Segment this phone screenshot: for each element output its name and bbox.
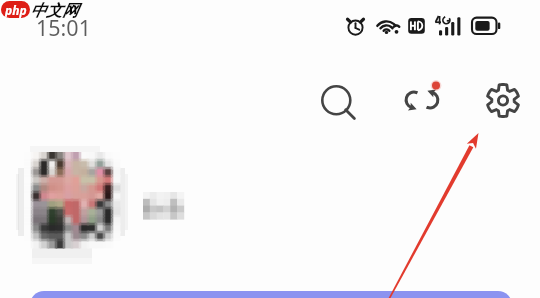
button[interactable] bbox=[10, 140, 210, 265]
staticText: 中文网 bbox=[30, 1, 78, 21]
staticText: 15:01 bbox=[36, 13, 91, 42]
button[interactable] bbox=[30, 291, 512, 298]
button[interactable]: Settings bbox=[479, 77, 526, 124]
button[interactable]: Search bbox=[313, 77, 360, 124]
button[interactable]: Phone Clone bbox=[399, 77, 446, 124]
staticText: php bbox=[5, 2, 27, 18]
